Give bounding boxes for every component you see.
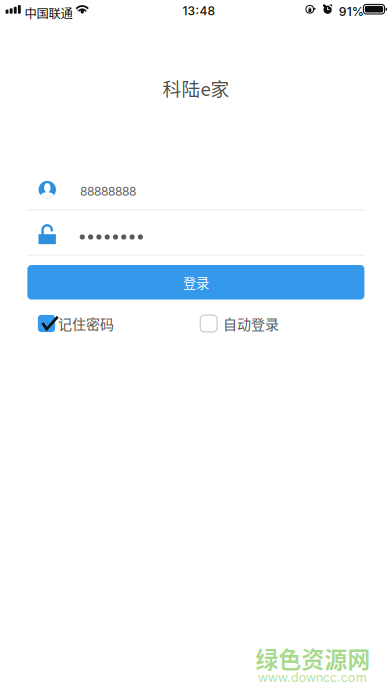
staticText: 88888888 (80, 184, 136, 198)
staticText: 绿色资源网 (255, 642, 370, 675)
button[interactable]: 自动登录 (200, 314, 279, 333)
staticText: www.downcc.com (258, 670, 367, 685)
staticText: 登录 (183, 273, 209, 292)
button[interactable]: 登录 (27, 265, 364, 299)
staticText: 自动登录 (223, 313, 279, 334)
staticText: 91% (339, 4, 364, 19)
staticText: 13:48 (182, 4, 215, 18)
button[interactable]: 记住密码 (38, 314, 114, 333)
staticText: 科陆e家 (162, 74, 229, 101)
staticText: 记住密码 (58, 313, 114, 334)
staticText: 中国联通 (24, 4, 72, 22)
